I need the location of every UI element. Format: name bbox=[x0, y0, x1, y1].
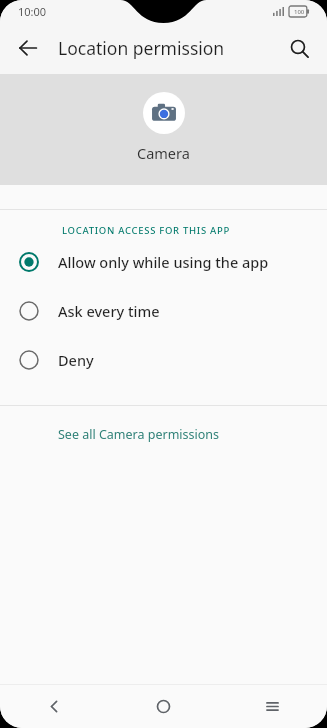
staticText: LOCATION ACCESS FOR THIS APP bbox=[62, 224, 230, 237]
staticText: 100 bbox=[294, 8, 305, 16]
button[interactable]: See all Camera permissions bbox=[0, 406, 327, 462]
staticText: 10:00 bbox=[18, 4, 47, 19]
button[interactable]: Ask every time bbox=[0, 286, 327, 335]
button[interactable]: Search bbox=[277, 26, 321, 70]
button[interactable]: Recent apps bbox=[218, 685, 327, 728]
staticText: Location permission bbox=[58, 36, 225, 60]
button[interactable]: Home bbox=[109, 685, 218, 728]
button[interactable]: Deny bbox=[0, 335, 327, 384]
staticText: Ask every time bbox=[58, 301, 160, 321]
staticText: Deny bbox=[58, 350, 94, 370]
button[interactable]: Allow only while using the app bbox=[0, 237, 327, 286]
staticText: Allow only while using the app bbox=[58, 252, 269, 272]
staticText: Camera bbox=[137, 143, 190, 163]
button[interactable]: Back bbox=[0, 685, 109, 728]
button[interactable]: Back bbox=[6, 26, 50, 70]
staticText: See all Camera permissions bbox=[58, 426, 220, 443]
